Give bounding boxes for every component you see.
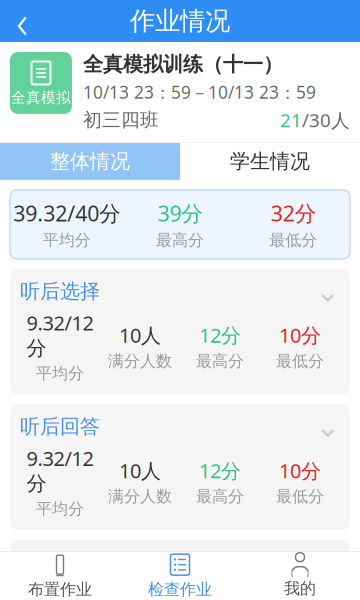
staticText: 12分: [199, 594, 241, 600]
staticText: 10人: [119, 594, 161, 600]
button[interactable]: 检查作业: [120, 552, 240, 600]
staticText: 最低分: [276, 487, 324, 506]
staticText: 听后记录&转述: [20, 550, 155, 576]
staticText: 10分: [279, 457, 321, 484]
staticText: 10分: [279, 322, 321, 348]
staticText: 最高分: [196, 487, 244, 506]
staticText: 9.32/12分: [26, 309, 93, 361]
button[interactable]: 我的: [240, 552, 360, 600]
button[interactable]: 学生情况: [180, 143, 360, 180]
staticText: 布置作业: [28, 580, 92, 599]
staticText: ‹: [16, 0, 28, 51]
staticText: 听后选择: [20, 279, 100, 303]
staticText: 学生情况: [230, 149, 310, 174]
staticText: 9.32/12分: [26, 445, 93, 496]
staticText: 平均分: [43, 230, 91, 250]
staticText: 39分: [157, 199, 202, 227]
staticText: 最低分: [269, 230, 317, 250]
staticText: 最高分: [156, 230, 204, 250]
staticText: 10人: [119, 322, 161, 348]
staticText: 全真模拟训练（十一）: [83, 52, 283, 77]
staticText: 平均分: [36, 364, 84, 383]
staticText: 10人: [119, 457, 161, 484]
staticText: 我的: [284, 579, 316, 598]
staticText: 最高分: [196, 351, 244, 371]
staticText: ⌄: [315, 410, 340, 443]
staticText: 32分: [271, 199, 316, 227]
staticText: 21: [280, 108, 302, 132]
button[interactable]: Back: [0, 1, 44, 41]
staticText: ⌄: [315, 546, 340, 580]
staticText: 最低分: [276, 351, 324, 371]
staticText: 平均分: [36, 499, 84, 519]
staticText: 全真模拟: [11, 88, 71, 106]
staticText: 听后回答: [20, 414, 100, 439]
button[interactable]: 布置作业: [0, 552, 120, 600]
staticText: ⌄: [315, 275, 340, 308]
button[interactable]: 听后回答: [10, 404, 350, 530]
staticText: 满分人数: [108, 487, 172, 506]
staticText: 12分: [199, 322, 241, 348]
staticText: 12分: [199, 457, 241, 484]
staticText: 作业情况: [130, 5, 230, 36]
button[interactable]: 听后记录&转述: [10, 540, 350, 600]
button[interactable]: 听后选择: [10, 269, 350, 394]
staticText: 整体情况: [50, 149, 130, 174]
staticText: 10/13 23：59－10/13 23：59: [83, 81, 316, 104]
staticText: 9.32/12分: [26, 582, 93, 600]
staticText: 初三四班: [83, 109, 159, 131]
staticText: 检查作业: [148, 580, 212, 599]
staticText: 10分: [279, 594, 321, 600]
button[interactable]: 整体情况: [0, 143, 180, 180]
staticText: /30人: [302, 108, 350, 132]
staticText: 满分人数: [108, 351, 172, 371]
staticText: 39.32/40分: [13, 199, 120, 227]
